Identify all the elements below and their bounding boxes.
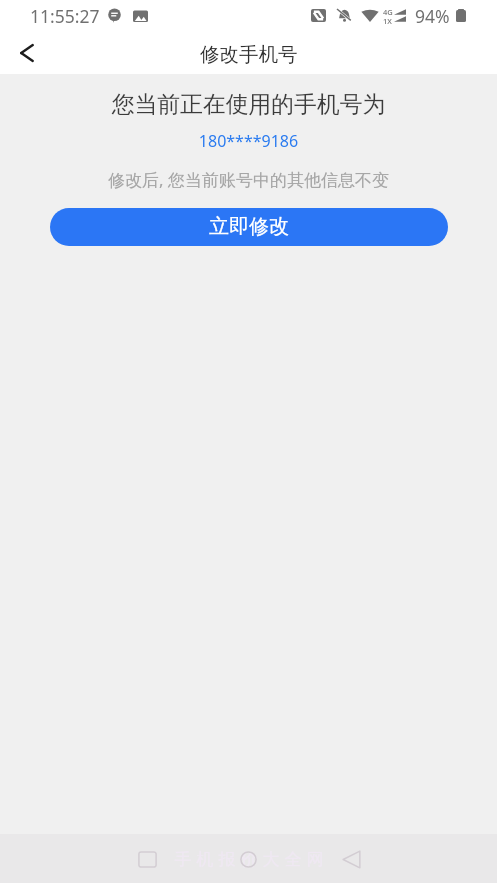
staticText: 1X — [383, 16, 392, 26]
staticText: 您当前正在使用的手机号为 — [0, 90, 497, 119]
button[interactable]: 立即修改 — [50, 208, 448, 246]
staticText: 立即修改 — [209, 214, 289, 239]
staticText: 94% — [415, 4, 450, 28]
staticText: 11:55:27 — [30, 4, 100, 28]
button[interactable]: Back — [5, 31, 49, 75]
staticText: 修改手机号 — [200, 42, 298, 67]
staticText: 手机报价大全网 — [172, 849, 326, 870]
staticText: 修改后, 您当前账号中的其他信息不变 — [0, 168, 497, 191]
staticText: 180****9186 — [0, 130, 497, 152]
button[interactable]: Recent apps — [127, 839, 167, 879]
staticText: 4G — [383, 7, 393, 17]
button[interactable]: Home — [228, 839, 268, 879]
button[interactable]: Back — [331, 839, 371, 879]
